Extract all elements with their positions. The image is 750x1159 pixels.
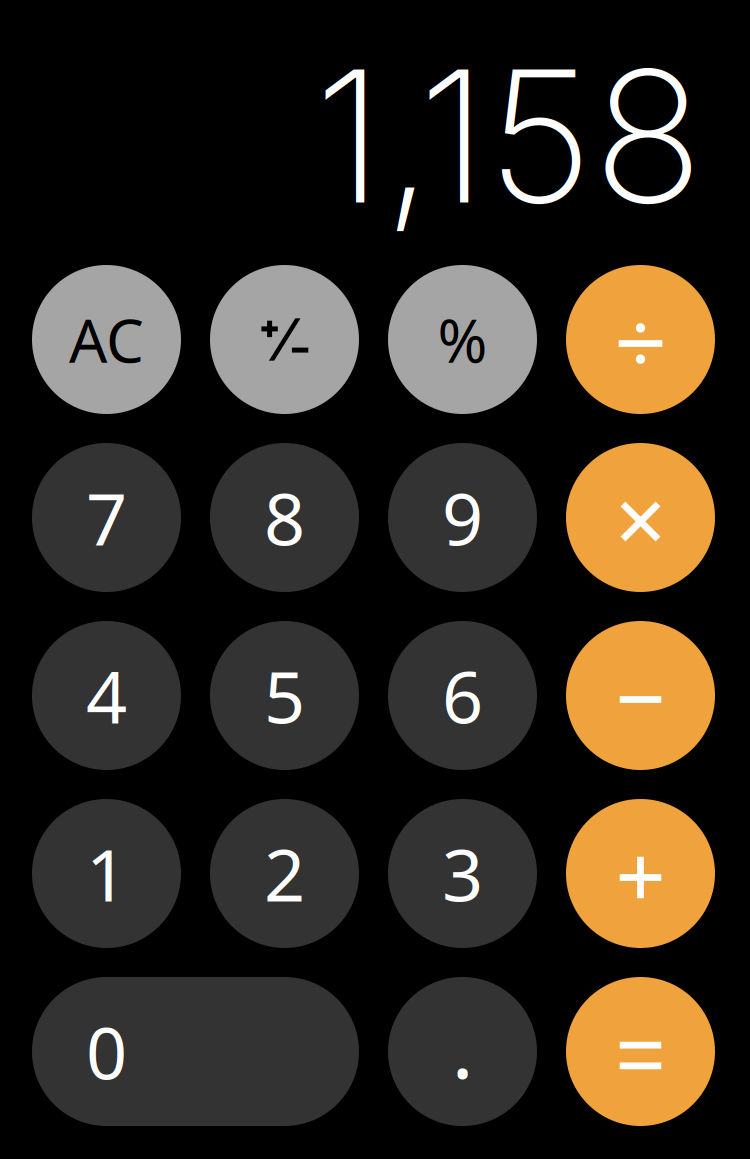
staticText: 5 — [264, 648, 305, 743]
button[interactable]: Multiply — [566, 443, 715, 592]
staticText: 9 — [442, 470, 483, 565]
button[interactable]: 4 — [32, 621, 181, 770]
staticText: 7 — [86, 470, 127, 565]
staticText: AC — [69, 300, 144, 379]
staticText: 6 — [442, 648, 483, 743]
button[interactable]: Subtract — [566, 621, 715, 770]
button[interactable]: 3 — [388, 799, 537, 948]
button[interactable]: 0 — [32, 977, 359, 1126]
button[interactable]: 9 — [388, 443, 537, 592]
staticText: 3 — [442, 826, 483, 921]
button[interactable]: 5 — [210, 621, 359, 770]
button[interactable]: 8 — [210, 443, 359, 592]
button[interactable]: 2 — [210, 799, 359, 948]
button[interactable]: Divide — [566, 265, 715, 414]
button[interactable]: AC — [32, 265, 181, 414]
staticText: 0 — [86, 1004, 127, 1099]
staticText: 1 — [86, 826, 127, 921]
button[interactable]: 7 — [32, 443, 181, 592]
staticText: 4 — [86, 648, 127, 743]
button[interactable]: Equals — [566, 977, 715, 1126]
button[interactable]: Toggle sign — [210, 265, 359, 414]
button[interactable]: Add — [566, 799, 715, 948]
button[interactable]: . — [388, 977, 537, 1126]
staticText: 8 — [264, 470, 305, 565]
button[interactable]: 6 — [388, 621, 537, 770]
staticText: 2 — [264, 826, 305, 921]
button[interactable]: % — [388, 265, 537, 414]
staticText: % — [437, 300, 487, 379]
staticText: . — [451, 992, 473, 1101]
staticText: 1,158 — [314, 25, 703, 246]
button[interactable]: 1 — [32, 799, 181, 948]
